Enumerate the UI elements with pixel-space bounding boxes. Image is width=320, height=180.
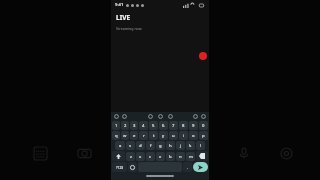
button[interactable]: 9 [189, 121, 198, 130]
button[interactable]: y [159, 131, 168, 140]
button[interactable]: ?123 [112, 162, 127, 172]
staticText: x [139, 154, 142, 160]
staticText: k [189, 143, 192, 149]
staticText: 9:41 [115, 2, 124, 8]
button[interactable]: 1 [112, 121, 120, 130]
button[interactable]: q [112, 131, 120, 140]
button[interactable]: s [126, 141, 135, 150]
button[interactable]: t [149, 131, 158, 140]
button[interactable]: Sticker [148, 114, 153, 119]
staticText: ?123 [116, 165, 124, 170]
staticText: d [139, 143, 142, 149]
button[interactable]: 4 [139, 121, 148, 130]
staticText: i [183, 133, 185, 139]
staticText: o [192, 133, 195, 139]
button[interactable]: Shift [112, 151, 125, 161]
staticText: s [129, 143, 132, 149]
button[interactable]: 5 [149, 121, 158, 130]
staticText: y [162, 133, 165, 139]
button[interactable]: c [146, 152, 155, 161]
button[interactable]: Keyboard [27, 140, 53, 166]
button[interactable]: Search [114, 114, 119, 119]
staticText: r [143, 133, 145, 139]
button[interactable]: e [130, 131, 138, 140]
button[interactable]: Screenshot [71, 140, 97, 166]
button[interactable]: 0 [199, 121, 208, 130]
staticText: l [200, 143, 202, 149]
staticText: w [123, 133, 127, 139]
button[interactable]: More [201, 114, 206, 119]
staticText: v [159, 154, 162, 160]
button[interactable]: Clipboard [168, 114, 173, 119]
button[interactable]: 6 [159, 121, 168, 130]
staticText: 1 [115, 123, 118, 129]
staticText: u [172, 133, 175, 139]
button[interactable]: r [139, 131, 148, 140]
staticText: n [179, 154, 182, 160]
staticText: j [180, 143, 182, 149]
staticText: Streaming now [116, 26, 142, 31]
button[interactable]: 2 [121, 121, 129, 130]
button[interactable]: Record [199, 52, 207, 60]
staticText: 5 [152, 123, 155, 129]
button[interactable]: i [179, 131, 188, 140]
button[interactable]: f [146, 141, 155, 150]
staticText: 3 [133, 123, 136, 129]
staticText: b [169, 154, 172, 160]
staticText: 8 [182, 123, 185, 129]
button[interactable]: p [199, 131, 208, 140]
button[interactable]: a [115, 141, 125, 150]
button[interactable]: Backspace [196, 151, 208, 161]
button[interactable]: o [189, 131, 198, 140]
button[interactable]: j [176, 141, 185, 150]
button[interactable]: k [186, 141, 195, 150]
staticText: m [189, 154, 193, 160]
button[interactable]: z [126, 152, 135, 161]
staticText: t [153, 133, 155, 139]
button[interactable]: d [136, 141, 145, 150]
button[interactable]: m [186, 152, 195, 161]
button[interactable]: 8 [179, 121, 188, 130]
button[interactable]: v [156, 152, 165, 161]
staticText: z [130, 154, 132, 160]
staticText: 2 [124, 123, 127, 129]
button[interactable]: 7 [169, 121, 178, 130]
button[interactable]: Settings [193, 114, 198, 119]
staticText: e [133, 133, 136, 139]
button[interactable]: Emoji [158, 114, 163, 119]
staticText: g [159, 143, 162, 149]
button[interactable]: x [136, 152, 145, 161]
button[interactable]: g [156, 141, 165, 150]
staticText: 9 [192, 123, 195, 129]
button[interactable]: Settings [273, 140, 299, 166]
staticText: a [119, 143, 122, 149]
button[interactable]: Period [183, 162, 192, 172]
staticText: h [169, 143, 172, 149]
button[interactable]: Emoji [128, 162, 137, 172]
button[interactable]: Microphone [231, 140, 257, 166]
staticText: p [202, 133, 205, 139]
staticText: q [115, 133, 118, 139]
staticText: 6 [162, 123, 165, 129]
button[interactable]: w [121, 131, 129, 140]
button[interactable]: b [166, 152, 175, 161]
staticText: 7 [172, 123, 175, 129]
staticText: LIVE [116, 13, 131, 22]
staticText: . [187, 165, 189, 170]
button[interactable]: n [176, 152, 185, 161]
staticText: c [149, 154, 152, 160]
button[interactable]: 3 [130, 121, 138, 130]
staticText: 4 [142, 123, 145, 129]
staticText: 0 [202, 123, 205, 129]
button[interactable]: GIF [122, 114, 127, 119]
button[interactable]: h [166, 141, 175, 150]
button[interactable]: u [169, 131, 178, 140]
button[interactable]: l [196, 141, 205, 150]
staticText: f [150, 143, 152, 149]
button[interactable]: Send [193, 162, 208, 172]
